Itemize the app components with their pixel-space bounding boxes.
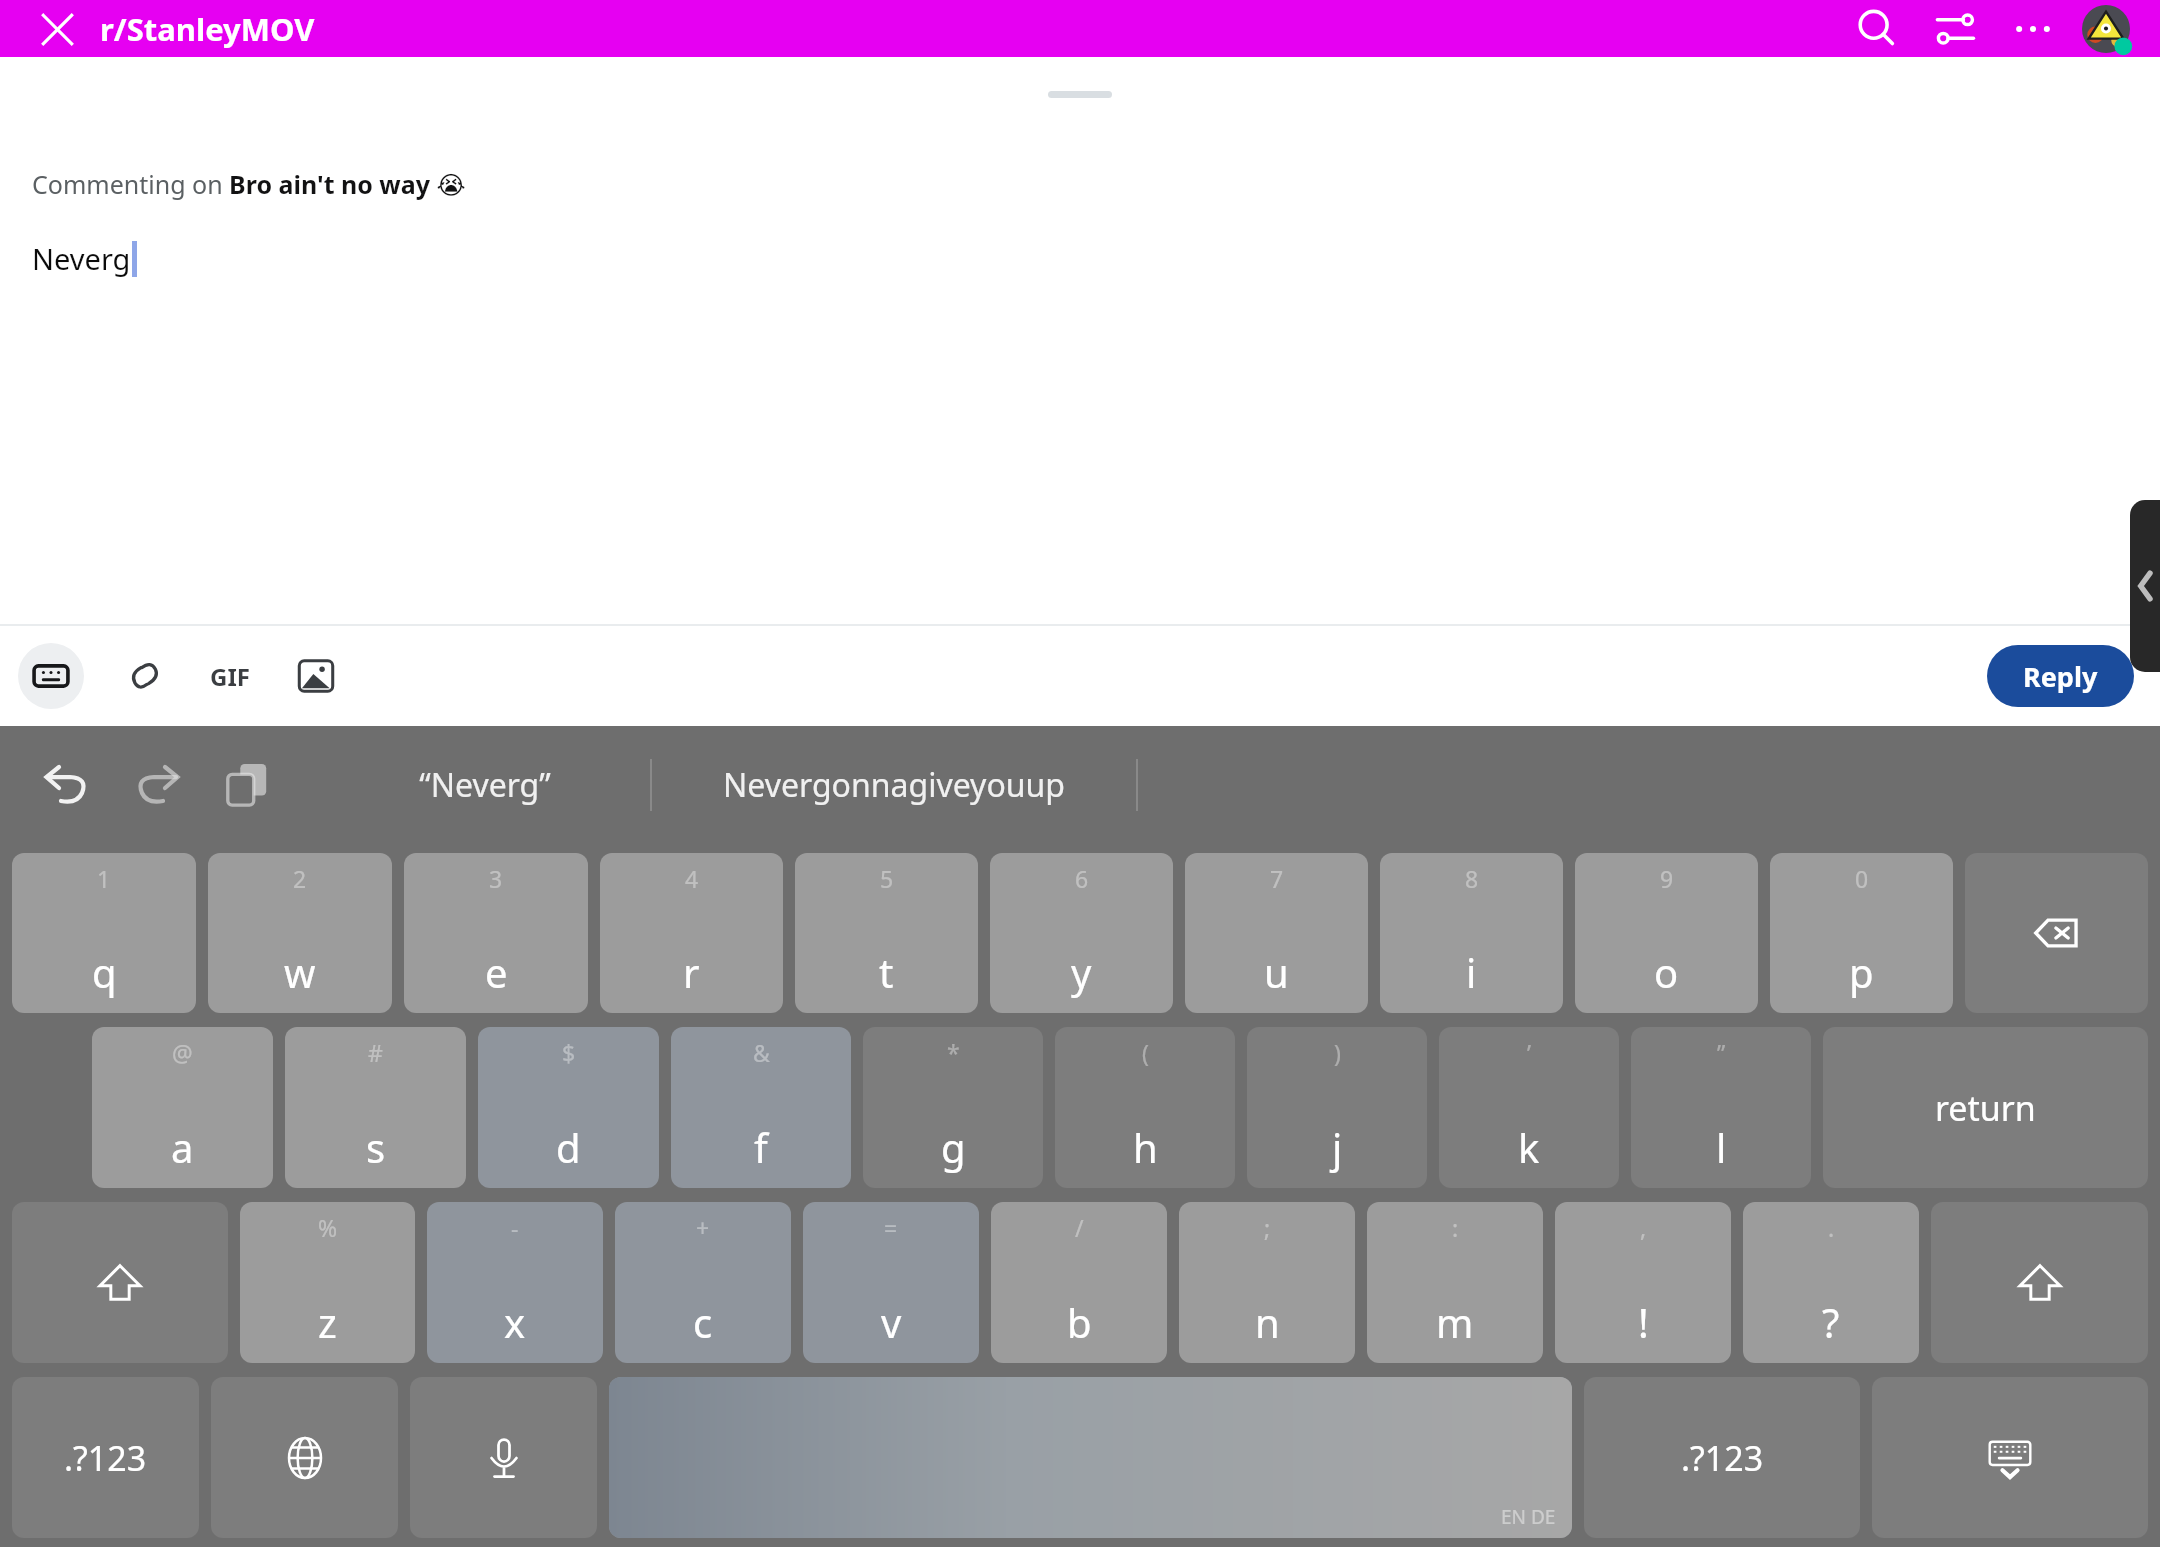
staticText: 9 bbox=[1660, 863, 1674, 894]
staticText: & bbox=[753, 1037, 770, 1068]
button[interactable]: Close bbox=[30, 2, 84, 56]
button[interactable]: Profile bbox=[2078, 1, 2134, 57]
button[interactable]: return bbox=[1823, 1027, 2148, 1188]
button[interactable]: 3 bbox=[404, 853, 588, 1013]
button[interactable]: Space bbox=[609, 1377, 1572, 1538]
button[interactable]: . bbox=[1743, 1202, 1919, 1363]
staticText: @ bbox=[172, 1037, 193, 1068]
staticText: EN DE bbox=[1501, 1504, 1556, 1530]
staticText: r bbox=[683, 945, 700, 999]
staticText: ” bbox=[1717, 1037, 1726, 1068]
button[interactable]: 5 bbox=[795, 853, 978, 1013]
button[interactable]: 8 bbox=[1380, 853, 1563, 1013]
button[interactable]: Voice input bbox=[410, 1377, 597, 1538]
button[interactable]: , bbox=[1555, 1202, 1731, 1363]
staticText: 3 bbox=[489, 863, 503, 894]
staticText: , bbox=[1640, 1212, 1647, 1243]
staticText: v bbox=[881, 1295, 902, 1349]
staticText: 6 bbox=[1075, 863, 1089, 894]
staticText: m bbox=[1436, 1295, 1474, 1349]
button[interactable]: 6 bbox=[990, 853, 1173, 1013]
staticText: o bbox=[1654, 945, 1679, 999]
staticText: = bbox=[884, 1212, 898, 1243]
staticText: 0 bbox=[1855, 863, 1869, 894]
staticText: 8 bbox=[1465, 863, 1479, 894]
staticText: j bbox=[1332, 1120, 1343, 1174]
staticText: d bbox=[556, 1120, 581, 1174]
staticText: ! bbox=[1638, 1295, 1649, 1349]
button[interactable]: Search bbox=[1842, 0, 1912, 57]
button[interactable]: / bbox=[991, 1202, 1167, 1363]
button[interactable]: Sort bbox=[1920, 0, 1990, 57]
staticText: l bbox=[1716, 1120, 1727, 1174]
button[interactable]: % bbox=[240, 1202, 415, 1363]
staticText: .?123 bbox=[64, 1435, 147, 1481]
button[interactable]: Reply bbox=[1987, 645, 2134, 707]
button[interactable]: # bbox=[285, 1027, 466, 1188]
button[interactable]: ’ bbox=[1439, 1027, 1619, 1188]
button[interactable]: Nevergonnagiveyouup bbox=[652, 726, 1136, 844]
staticText: return bbox=[1935, 1085, 2036, 1131]
staticText: Commenting on Bro ain't no way 😭 bbox=[32, 167, 466, 201]
staticText: Neverg bbox=[32, 239, 131, 278]
staticText: p bbox=[1849, 945, 1874, 999]
button[interactable]: ” bbox=[1631, 1027, 1811, 1188]
staticText: g bbox=[941, 1120, 966, 1174]
button[interactable]: 9 bbox=[1575, 853, 1758, 1013]
staticText: - bbox=[511, 1212, 519, 1243]
button[interactable]: More options bbox=[1998, 0, 2068, 57]
staticText: . bbox=[1828, 1212, 1835, 1243]
button[interactable]: + bbox=[615, 1202, 791, 1363]
staticText: GIF bbox=[210, 660, 250, 693]
button[interactable]: Shift bbox=[12, 1202, 228, 1363]
button[interactable]: & bbox=[671, 1027, 851, 1188]
staticText: k bbox=[1518, 1120, 1540, 1174]
button[interactable]: ) bbox=[1247, 1027, 1427, 1188]
button[interactable]: * bbox=[863, 1027, 1043, 1188]
button[interactable]: ( bbox=[1055, 1027, 1235, 1188]
button[interactable]: Change language bbox=[211, 1377, 398, 1538]
staticText: e bbox=[485, 945, 508, 999]
button[interactable]: GIF bbox=[198, 644, 262, 708]
button[interactable]: Redo bbox=[120, 748, 194, 822]
staticText: x bbox=[504, 1295, 526, 1349]
button[interactable]: Clipboard bbox=[210, 748, 284, 822]
staticText: ? bbox=[1822, 1295, 1840, 1349]
button[interactable]: 0 bbox=[1770, 853, 1953, 1013]
button[interactable]: Undo bbox=[30, 748, 104, 822]
button[interactable]: 4 bbox=[600, 853, 783, 1013]
button[interactable]: Shift bbox=[1931, 1202, 2148, 1363]
staticText: t bbox=[879, 945, 894, 999]
staticText: Nevergonnagiveyouup bbox=[723, 763, 1065, 807]
button[interactable]: $ bbox=[478, 1027, 659, 1188]
staticText: 2 bbox=[293, 863, 307, 894]
staticText: n bbox=[1255, 1295, 1280, 1349]
staticText: s bbox=[366, 1120, 386, 1174]
staticText: # bbox=[368, 1037, 383, 1068]
button[interactable]: 2 bbox=[208, 853, 392, 1013]
staticText: % bbox=[318, 1212, 338, 1243]
button[interactable]: “Neverg” bbox=[320, 726, 650, 844]
button[interactable]: Hide keyboard bbox=[1872, 1377, 2148, 1538]
staticText: w bbox=[284, 945, 316, 999]
button[interactable]: : bbox=[1367, 1202, 1543, 1363]
button[interactable]: .?123 bbox=[1584, 1377, 1860, 1538]
button[interactable]: .?123 bbox=[12, 1377, 199, 1538]
button[interactable]: Open side panel bbox=[2130, 500, 2160, 672]
staticText: “Neverg” bbox=[419, 763, 551, 807]
button[interactable]: ; bbox=[1179, 1202, 1355, 1363]
button[interactable]: 1 bbox=[12, 853, 196, 1013]
button[interactable]: Insert link bbox=[114, 646, 174, 706]
button[interactable]: Insert image bbox=[286, 646, 346, 706]
staticText: $ bbox=[562, 1037, 576, 1068]
button[interactable]: - bbox=[427, 1202, 603, 1363]
button[interactable]: = bbox=[803, 1202, 979, 1363]
staticText: c bbox=[693, 1295, 713, 1349]
button[interactable]: 7 bbox=[1185, 853, 1368, 1013]
staticText: z bbox=[318, 1295, 337, 1349]
button[interactable]: @ bbox=[92, 1027, 273, 1188]
staticText: 4 bbox=[685, 863, 699, 894]
staticText: ( bbox=[1142, 1037, 1149, 1068]
button[interactable]: Keyboard bbox=[18, 643, 84, 709]
button[interactable]: Backspace bbox=[1965, 853, 2148, 1013]
